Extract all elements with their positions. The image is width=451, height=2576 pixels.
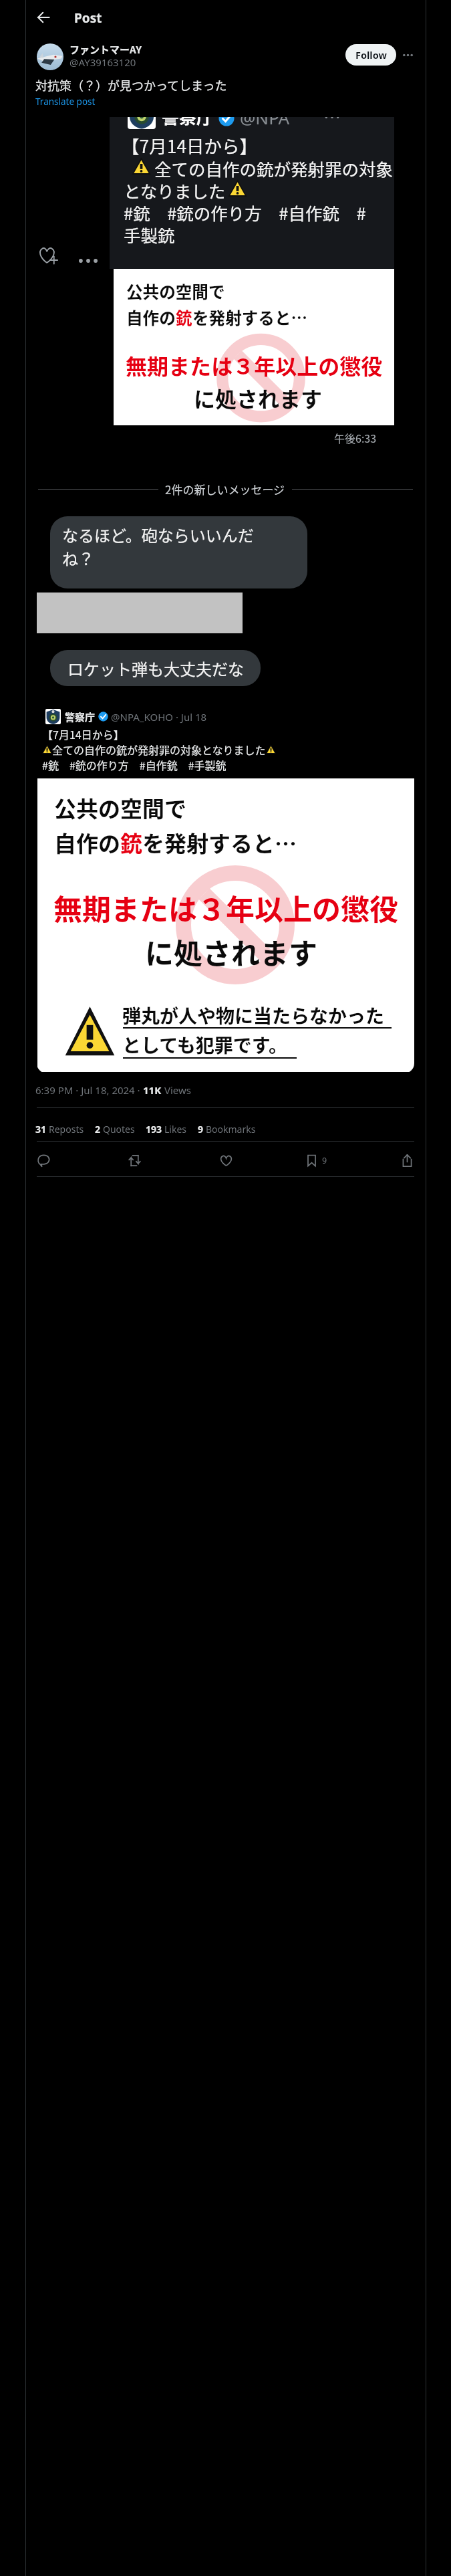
button[interactable]: 31 xyxy=(35,1123,84,1136)
button[interactable]: Bookmark xyxy=(305,1149,327,1172)
staticText: Translate post xyxy=(35,96,96,108)
staticText: 6:39 PM · Jul 18, 2024 · xyxy=(35,1083,143,1097)
staticText: ロケット弾も大丈夫だな xyxy=(67,657,244,680)
staticText: Reposts xyxy=(49,1123,84,1136)
staticText: 9 xyxy=(198,1123,204,1136)
staticText: @NPA_KOHO · Jul 18 xyxy=(111,710,207,724)
staticText: に処されます xyxy=(126,383,390,413)
staticText: Follow xyxy=(355,48,387,62)
button[interactable]: Translate post xyxy=(35,96,96,108)
staticText: Likes xyxy=(164,1123,187,1136)
button[interactable]: 2 xyxy=(95,1123,135,1136)
staticText: 警察庁 xyxy=(65,710,96,724)
staticText: 全ての自作の銃が発射罪の対象となりました xyxy=(52,742,266,757)
staticText: ⋯ xyxy=(323,117,341,129)
button[interactable]: 193 xyxy=(146,1123,187,1136)
staticText: ね？ xyxy=(62,546,94,570)
button[interactable]: Reply xyxy=(32,1149,55,1172)
staticText: 銃 xyxy=(120,827,142,859)
staticText: Quotes xyxy=(103,1123,135,1136)
staticText: 警察庁 xyxy=(162,117,214,129)
staticText: 銃 xyxy=(176,305,192,329)
button[interactable]: Back xyxy=(30,4,57,31)
staticText: 手製銃 xyxy=(124,222,175,247)
staticText: となりました xyxy=(124,178,226,203)
staticText: 公共の空間で xyxy=(54,792,186,824)
staticText: 【7月14日から】 xyxy=(122,132,258,158)
staticText: 自作の xyxy=(126,305,176,329)
staticText: #銃 #銃の作り方 #自作銃 #手製銃 xyxy=(42,757,227,772)
staticText: 午後6:33 xyxy=(334,430,377,445)
staticText: 公共の空間で xyxy=(126,279,225,303)
staticText: 【7月14日から】 xyxy=(42,726,124,742)
staticText: 9 xyxy=(322,1155,327,1166)
staticText: Views xyxy=(162,1083,191,1097)
staticText: 無期または３年以上の懲役 xyxy=(53,887,398,928)
button[interactable]: Like xyxy=(214,1149,237,1172)
button[interactable]: Image xyxy=(37,117,414,697)
staticText: 2件の新しいメッセージ xyxy=(165,481,285,498)
staticText: に処されます xyxy=(53,931,409,972)
staticText: @NPA xyxy=(240,117,290,129)
staticText: 対抗策（？）が見つかってしまった xyxy=(35,76,227,94)
staticText: 無期または３年以上の懲役 xyxy=(126,350,383,381)
button[interactable]: Follow xyxy=(345,44,396,66)
staticText: ファントマーAY xyxy=(69,42,142,57)
staticText: @AY39163120 xyxy=(69,56,136,69)
button[interactable]: More options xyxy=(399,46,416,64)
staticText: 弾丸が人や物に当たらなかった xyxy=(122,1002,385,1029)
staticText: を発射すると… xyxy=(142,827,297,859)
button[interactable]: Repost xyxy=(123,1149,146,1172)
staticText: Bookmarks xyxy=(206,1123,256,1136)
button[interactable]: 警察庁 xyxy=(37,702,414,1073)
staticText: #銃 #銃の作り方 #自作銃 # xyxy=(124,200,366,225)
button[interactable]: 9 xyxy=(198,1123,256,1136)
staticText: 11K xyxy=(143,1083,162,1097)
staticText: 2 xyxy=(95,1123,101,1136)
staticText: なるほど。砲ならいいんだ xyxy=(62,523,254,546)
staticText: を発射すると… xyxy=(192,305,308,329)
staticText: 31 xyxy=(35,1123,47,1136)
staticText: としても犯罪です。 xyxy=(122,1031,287,1059)
staticText: 自作の xyxy=(54,827,120,859)
button[interactable]: Profile photo xyxy=(37,43,63,70)
button[interactable]: Share xyxy=(396,1149,418,1172)
staticText: 全ての自作の銃が発射罪の対象 xyxy=(154,156,394,181)
staticText: Post xyxy=(74,9,102,27)
staticText: 193 xyxy=(146,1123,162,1136)
